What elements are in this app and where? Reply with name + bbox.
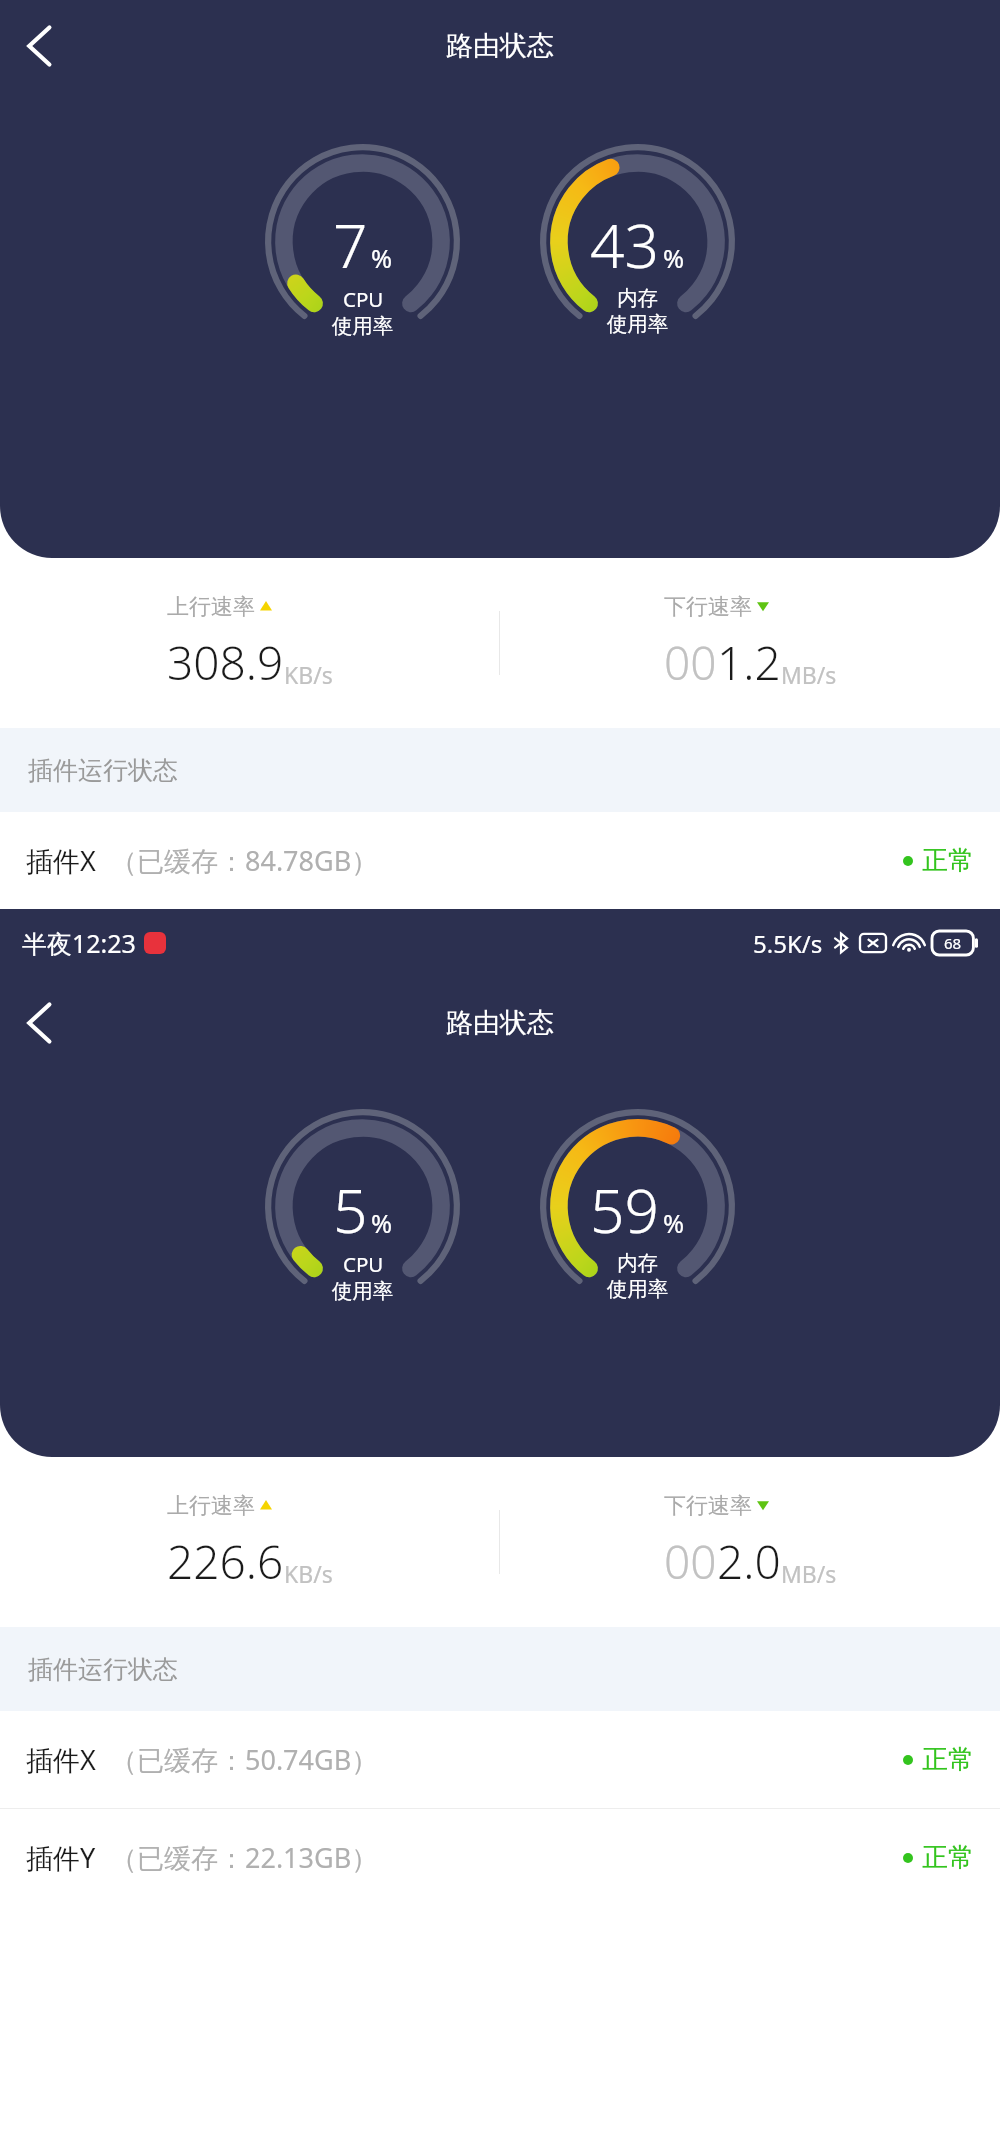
staticText: 插件X [26, 842, 96, 879]
staticText: 上行速率 [167, 1492, 255, 1520]
staticText: 插件X [26, 1741, 96, 1778]
staticText: 插件运行状态 [28, 1654, 178, 1685]
staticText: （已缓存：50.74GB） [110, 1741, 379, 1778]
staticText: % [663, 241, 685, 276]
staticText: 内存 [617, 285, 658, 311]
staticText: 226.6 [167, 1530, 284, 1593]
staticText: 下行速率 [664, 1492, 752, 1520]
staticText: 路由状态 [446, 1006, 554, 1040]
staticText: % [663, 1206, 685, 1241]
staticText: 内存 [617, 1250, 658, 1276]
staticText: 1.2 [717, 631, 781, 694]
staticText: 使用率 [607, 311, 669, 337]
button[interactable]: Back [6, 11, 76, 81]
staticText: 半夜12:23 [22, 926, 136, 960]
staticText: 使用率 [607, 1276, 669, 1302]
staticText: % [371, 1206, 393, 1241]
staticText: 插件运行状态 [28, 755, 178, 786]
button[interactable]: 插件X [0, 1711, 1000, 1809]
staticText: 68 [944, 933, 962, 953]
staticText: 使用率 [332, 313, 394, 339]
button[interactable]: Back [6, 988, 76, 1058]
staticText: （已缓存：22.13GB） [110, 1839, 379, 1876]
button[interactable]: 插件Y [0, 1809, 1000, 1906]
staticText: MB/s [781, 659, 837, 690]
staticText: 插件Y [26, 1839, 96, 1876]
button[interactable]: 插件X [0, 812, 1000, 909]
staticText: 下行速率 [664, 593, 752, 621]
staticText: KB/s [284, 1558, 333, 1589]
staticText: 43 [590, 203, 660, 285]
staticText: 308.9 [167, 631, 284, 694]
staticText: 正常 [922, 1743, 974, 1776]
staticText: 路由状态 [446, 29, 554, 63]
staticText: 5.5K/s [753, 927, 823, 960]
staticText: MB/s [781, 1558, 837, 1589]
staticText: 正常 [922, 844, 974, 877]
staticText: 7 [333, 203, 368, 285]
staticText: CPU [343, 1250, 384, 1278]
staticText: 正常 [922, 1841, 974, 1874]
staticText: （已缓存：84.78GB） [110, 842, 379, 879]
staticText: 00 [664, 1530, 717, 1593]
staticText: 59 [590, 1168, 660, 1250]
staticText: 5 [333, 1168, 368, 1250]
staticText: CPU [343, 285, 384, 313]
staticText: 2.0 [717, 1530, 781, 1593]
staticText: KB/s [284, 659, 333, 690]
staticText: 使用率 [332, 1278, 394, 1304]
staticText: 上行速率 [167, 593, 255, 621]
staticText: % [371, 241, 393, 276]
staticText: 00 [664, 631, 717, 694]
